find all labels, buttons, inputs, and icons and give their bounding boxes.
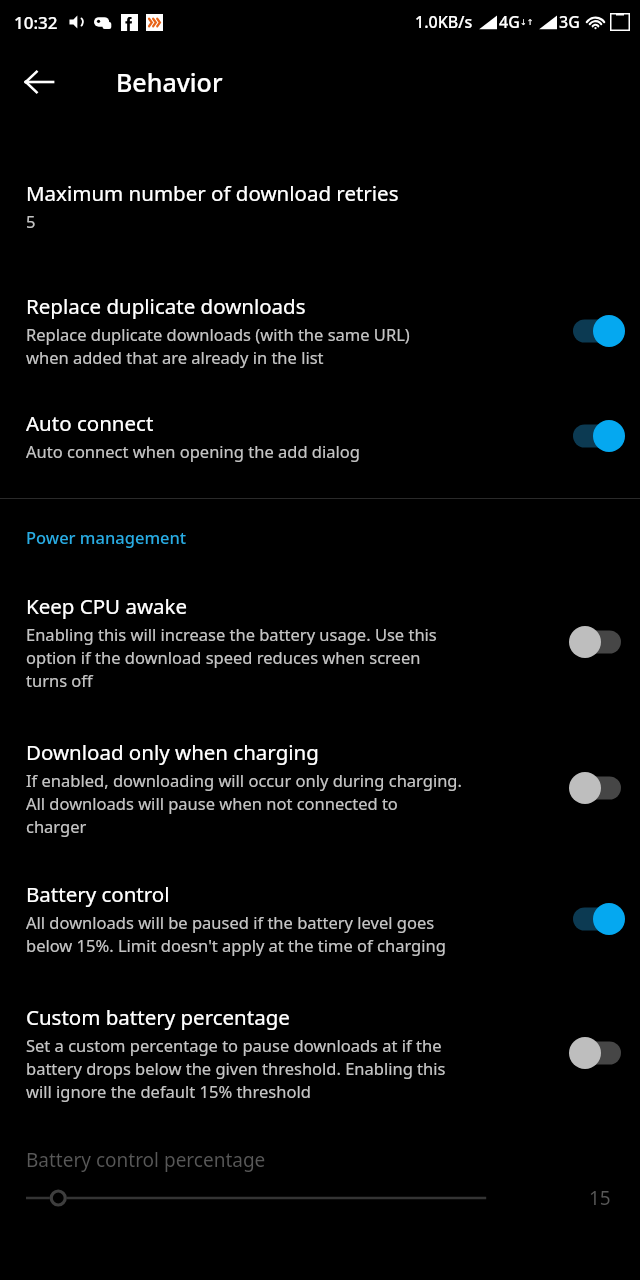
staticText: Auto connect: [26, 409, 154, 437]
staticText: Download only when charging: [26, 738, 319, 766]
button[interactable]: Replace duplicate downloads: [0, 286, 640, 375]
staticText: Battery control: [26, 880, 170, 908]
staticText: Maximum number of download retries: [26, 179, 399, 207]
button[interactable]: Custom battery percentage: [0, 997, 640, 1109]
staticText: 3G: [559, 11, 580, 33]
button[interactable]: Battery control: [0, 874, 640, 963]
button[interactable]: Back: [14, 57, 64, 107]
button[interactable]: Auto connect: [0, 403, 640, 468]
staticText: 1.0KB/s: [415, 11, 473, 33]
staticText: 10:32: [14, 11, 58, 34]
staticText: 4G: [499, 11, 520, 33]
staticText: 5: [26, 210, 36, 232]
staticText: Behavior: [116, 65, 223, 99]
staticText: Battery control percentage: [26, 1147, 266, 1173]
staticText: Enabling this will increase the battery …: [26, 623, 437, 692]
button[interactable]: Keep CPU awake: [0, 586, 640, 698]
staticText: Custom battery percentage: [26, 1003, 290, 1031]
button[interactable]: Maximum number of download retries: [0, 173, 640, 238]
button[interactable]: Battery control percentage: [0, 1147, 640, 1211]
staticText: Power management: [26, 526, 187, 548]
staticText: If enabled, downloading will occur only …: [26, 769, 462, 838]
staticText: Keep CPU awake: [26, 592, 188, 620]
staticText: Replace duplicate downloads: [26, 292, 306, 320]
staticText: 15: [589, 1185, 611, 1211]
button[interactable]: Download only when charging: [0, 732, 640, 844]
staticText: ↓↑: [520, 18, 534, 27]
staticText: Auto connect when opening the add dialog: [26, 440, 360, 462]
staticText: All downloads will be paused if the batt…: [26, 911, 446, 957]
staticText: Set a custom percentage to pause downloa…: [26, 1034, 446, 1103]
staticText: Replace duplicate downloads (with the sa…: [26, 323, 410, 369]
